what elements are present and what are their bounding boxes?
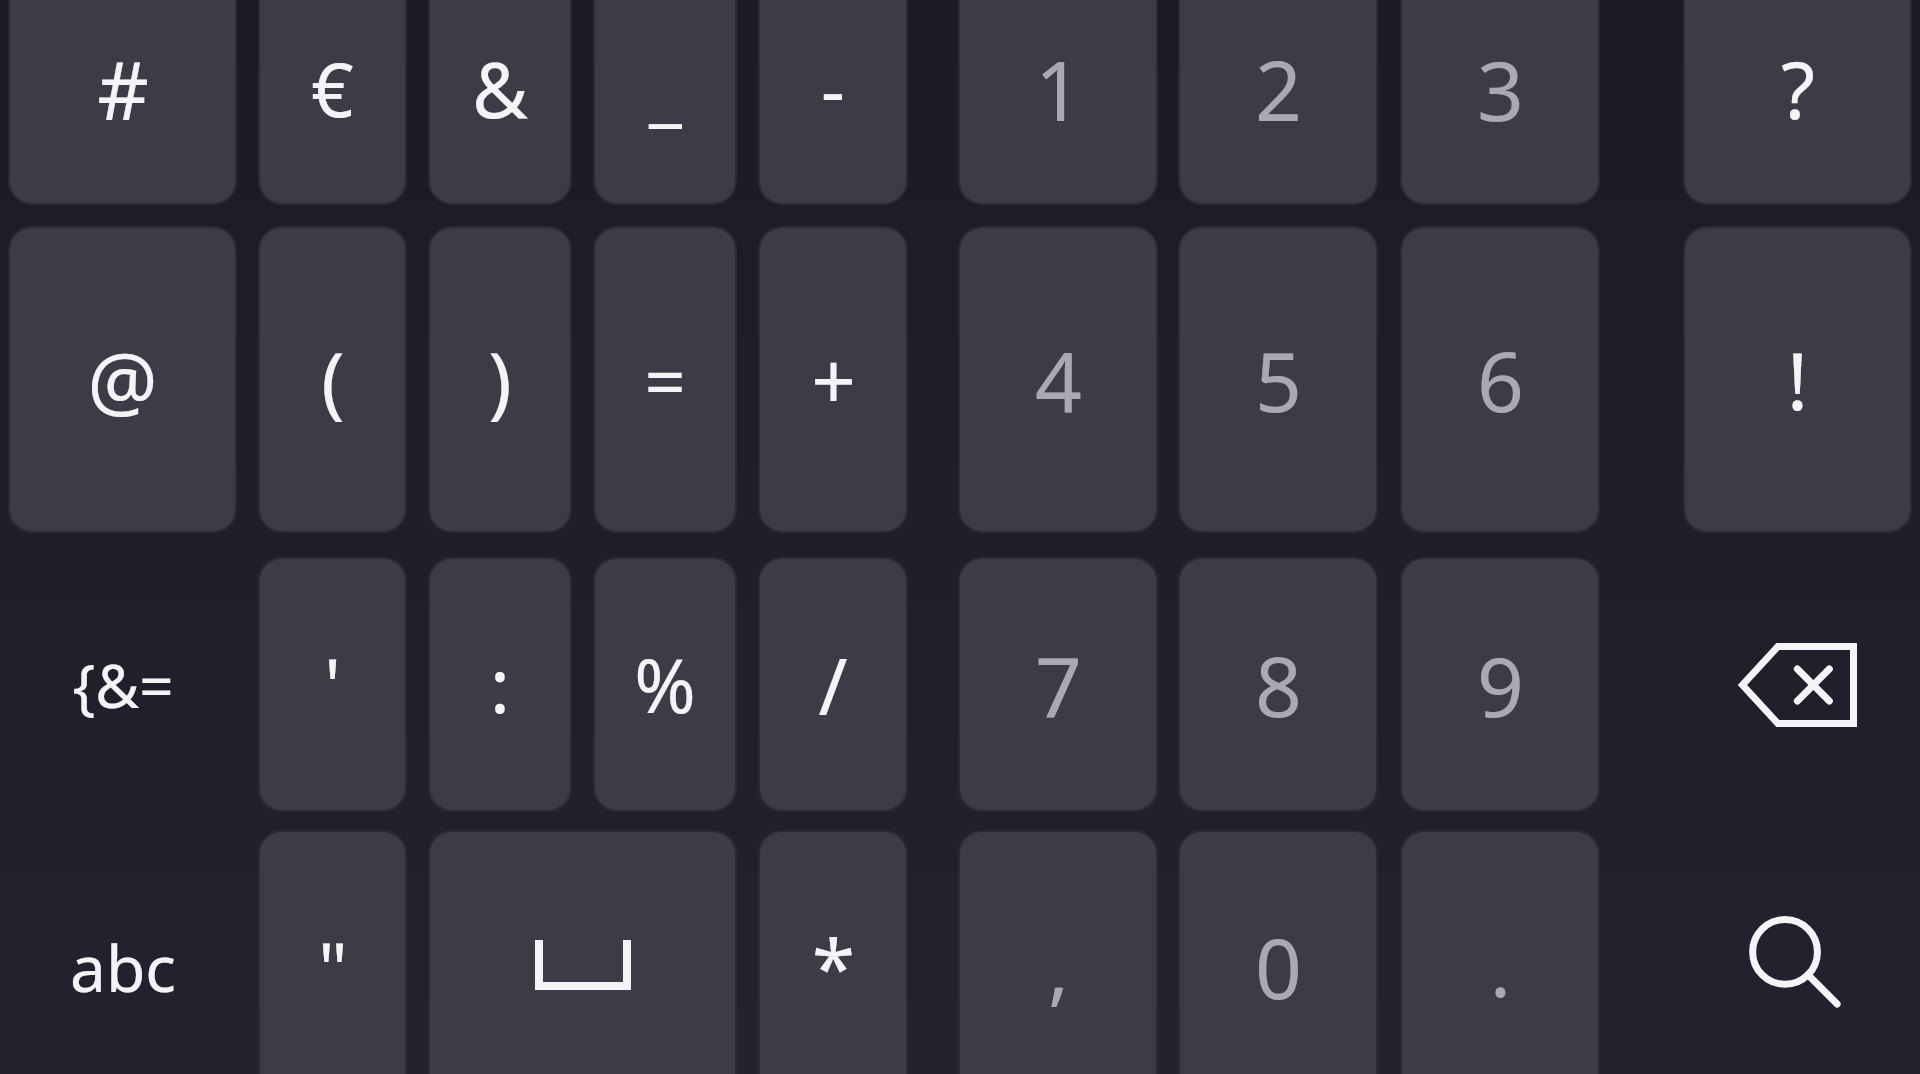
- button[interactable]: 3: [1402, 0, 1598, 203]
- button[interactable]: =: [595, 228, 735, 531]
- button[interactable]: 8: [1180, 559, 1376, 810]
- button[interactable]: 2: [1180, 0, 1376, 203]
- button[interactable]: &: [430, 0, 570, 203]
- button[interactable]: .: [1402, 832, 1598, 1074]
- staticText: %: [634, 634, 696, 735]
- staticText: _: [649, 38, 682, 139]
- staticText: /: [818, 632, 848, 738]
- staticText: &: [472, 37, 528, 141]
- staticText: !: [1787, 327, 1808, 433]
- staticText: #: [97, 34, 149, 143]
- button[interactable]: +: [760, 228, 906, 531]
- staticText: +: [811, 327, 856, 433]
- button[interactable]: @: [10, 228, 235, 531]
- button[interactable]: 5: [1180, 228, 1376, 531]
- staticText: @: [87, 327, 158, 433]
- button[interactable]: Backspace: [1683, 557, 1912, 812]
- button[interactable]: ': [260, 559, 405, 810]
- staticText: 1: [1035, 33, 1082, 145]
- button[interactable]: -: [760, 0, 906, 203]
- staticText: 3: [1477, 33, 1524, 145]
- button[interactable]: Search: [1683, 830, 1912, 1074]
- staticText: -: [821, 38, 845, 139]
- staticText: ): [488, 327, 512, 433]
- button[interactable]: 6: [1402, 228, 1598, 531]
- staticText: (: [321, 327, 345, 433]
- staticText: 0: [1255, 911, 1302, 1023]
- button[interactable]: {&=: [8, 557, 237, 812]
- staticText: abc: [70, 924, 176, 1011]
- button[interactable]: ": [260, 832, 405, 1074]
- staticText: ?: [1781, 36, 1815, 142]
- button[interactable]: 1: [960, 0, 1156, 203]
- staticText: {&=: [72, 644, 174, 726]
- button[interactable]: ): [430, 228, 570, 531]
- button[interactable]: :: [430, 559, 570, 810]
- button[interactable]: *: [760, 832, 906, 1074]
- staticText: *: [812, 914, 855, 1020]
- staticText: 2: [1255, 33, 1302, 145]
- button[interactable]: 9: [1402, 559, 1598, 810]
- staticText: €: [311, 38, 354, 139]
- staticText: 5: [1255, 324, 1302, 436]
- button[interactable]: %: [595, 559, 735, 810]
- button[interactable]: Space: [430, 832, 735, 1074]
- button[interactable]: 7: [960, 559, 1156, 810]
- button[interactable]: #: [10, 0, 235, 203]
- button[interactable]: 0: [1180, 832, 1376, 1074]
- staticText: ": [318, 918, 348, 1016]
- staticText: 7: [1035, 629, 1082, 741]
- button[interactable]: ?: [1685, 0, 1910, 203]
- staticText: ': [324, 634, 341, 735]
- button[interactable]: (: [260, 228, 405, 531]
- button[interactable]: €: [260, 0, 405, 203]
- staticText: 9: [1477, 629, 1524, 741]
- staticText: .: [1490, 914, 1511, 1020]
- staticText: 4: [1035, 324, 1082, 436]
- staticText: ,: [1048, 914, 1069, 1020]
- staticText: 8: [1255, 629, 1302, 741]
- button[interactable]: ,: [960, 832, 1156, 1074]
- button[interactable]: 4: [960, 228, 1156, 531]
- staticText: =: [644, 331, 686, 429]
- staticText: 6: [1477, 324, 1524, 436]
- button[interactable]: !: [1685, 228, 1910, 531]
- staticText: :: [490, 634, 510, 735]
- button[interactable]: _: [595, 0, 735, 203]
- button[interactable]: /: [760, 559, 906, 810]
- button[interactable]: abc: [8, 830, 237, 1074]
